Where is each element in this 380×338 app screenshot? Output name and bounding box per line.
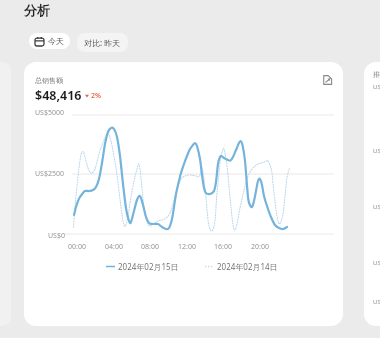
staticText: 分析 [24,2,50,18]
staticText: US$0 [373,298,380,306]
staticText: US$2500 [35,169,64,179]
button[interactable]: 今天 [29,33,70,49]
staticText: US$2500 [373,203,380,211]
staticText: 排名 [373,70,380,79]
staticText: 08:00 [141,242,159,252]
staticText: 16:00 [214,242,232,252]
staticText: 2% [91,91,101,101]
staticText: US$0 [48,231,65,241]
staticText: US$1250 [373,259,380,267]
button[interactable]: 对比: 昨天 [77,33,128,52]
staticText: 04:00 [105,242,123,252]
staticText: 今天 [48,36,64,46]
staticText: 对比: 昨天 [84,37,121,48]
staticText: 00:00 [68,242,86,252]
staticText: US$5000 [373,83,380,91]
staticText: 20:00 [251,242,269,252]
staticText: 12:00 [178,242,196,252]
staticText: US$3750 [373,147,380,155]
staticText: US$5000 [35,108,64,118]
staticText: 2024年02月15日 [118,261,179,272]
staticText: 总销售额 [35,76,63,85]
staticText: 2024年02月14日 [217,261,278,272]
button[interactable]: Export report [320,73,334,87]
staticText: $48,416 [35,87,82,104]
